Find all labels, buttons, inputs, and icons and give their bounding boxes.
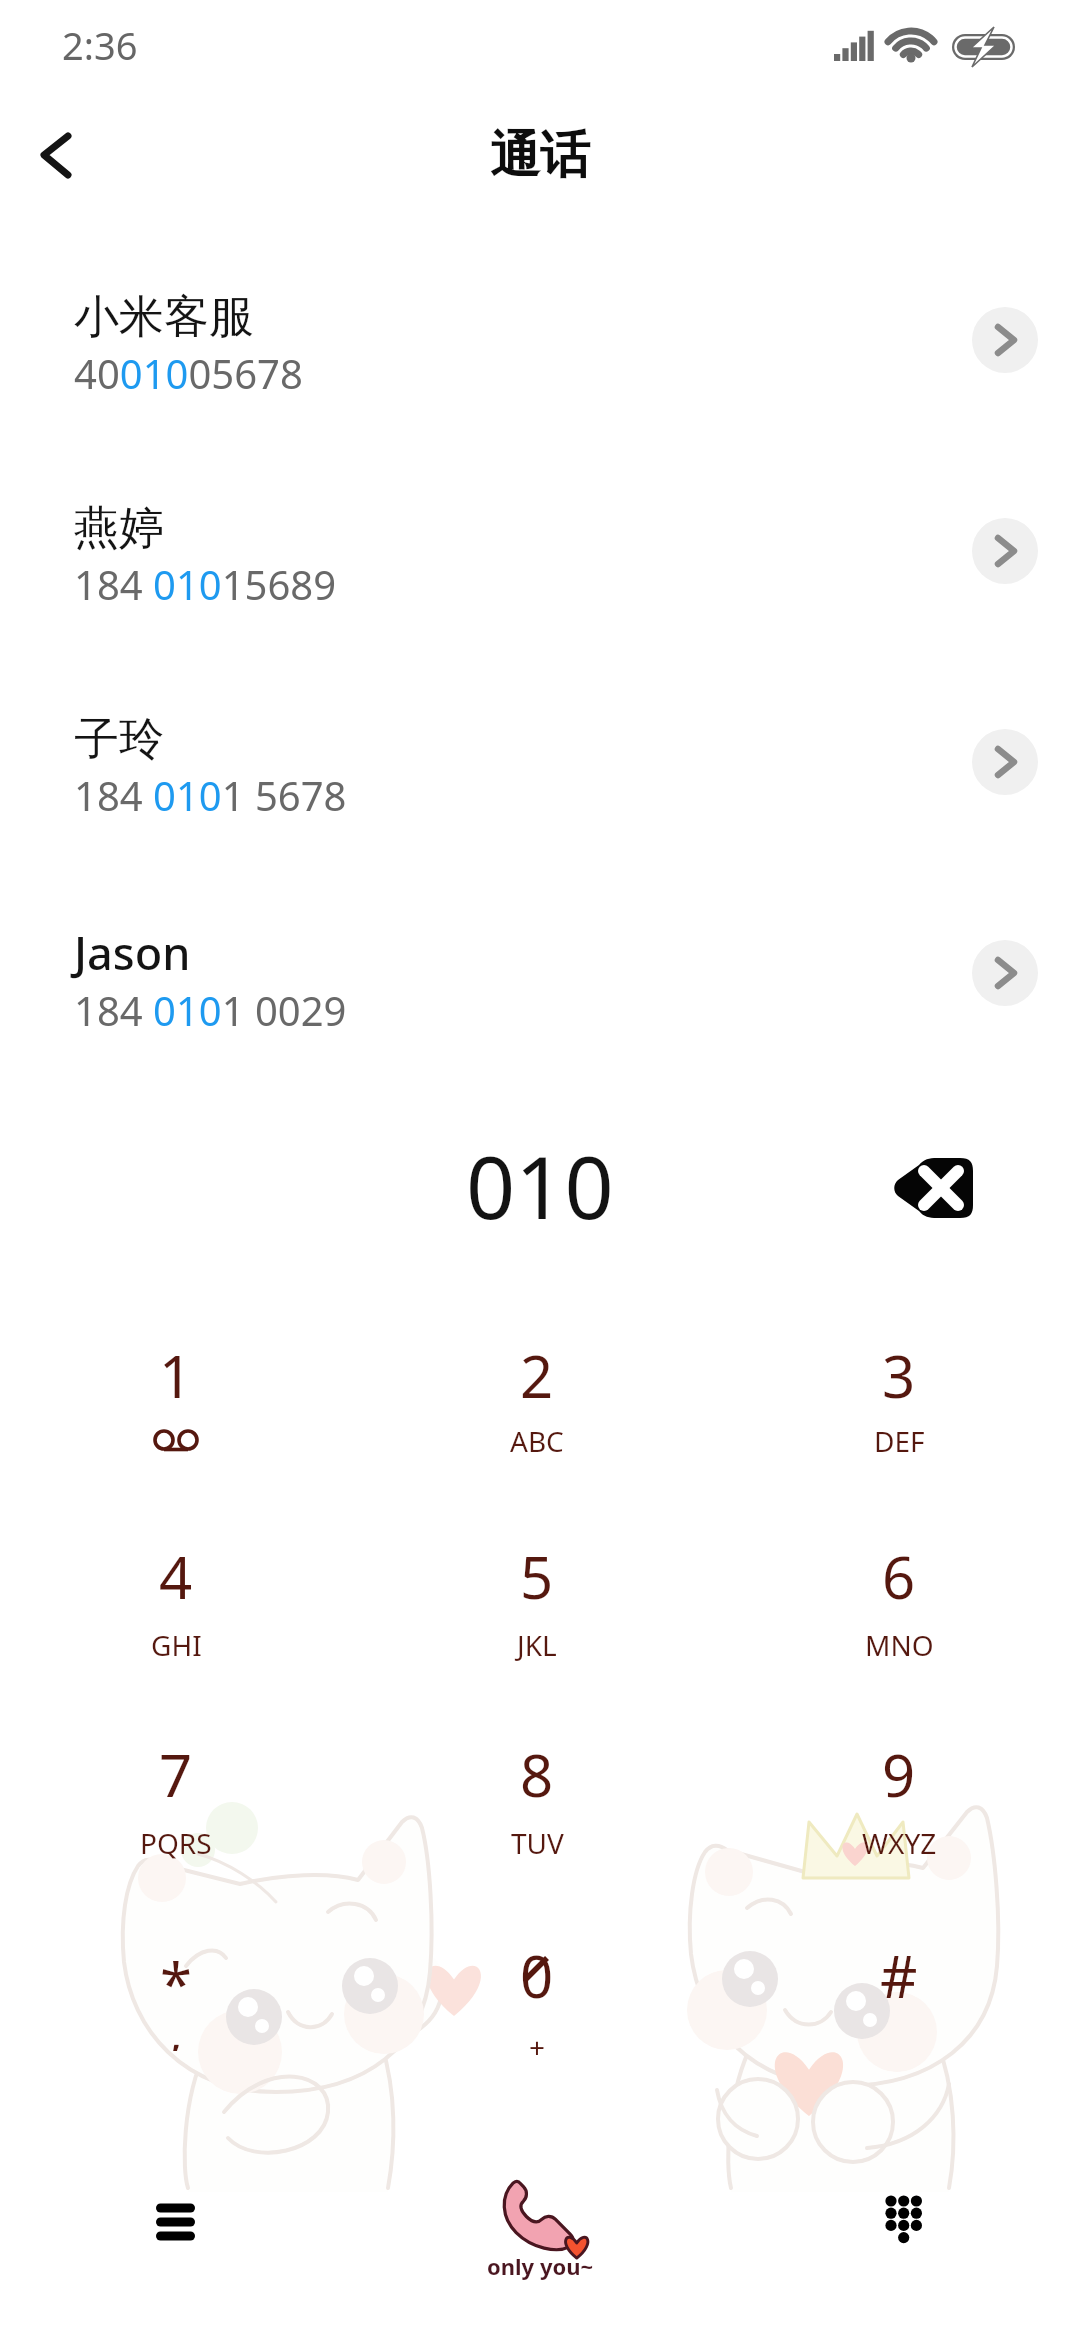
staticText: 子玲 <box>74 711 164 768</box>
staticText: TUV <box>511 1824 564 1862</box>
staticText: ABC <box>510 1422 564 1460</box>
staticText: GHI <box>151 1626 202 1664</box>
button[interactable]: Back <box>10 110 100 200</box>
staticText: 184 0101 0029 <box>74 983 347 1037</box>
button[interactable]: 5 <box>417 1507 657 1687</box>
button[interactable]: 0 <box>417 1906 657 2086</box>
staticText: WXYZ <box>862 1824 937 1862</box>
button[interactable]: 6 <box>779 1507 1019 1687</box>
staticText: 8 <box>520 1735 554 1807</box>
button[interactable]: 小米客服 <box>0 279 1080 490</box>
staticText: 9 <box>882 1735 916 1807</box>
staticText: , <box>170 2001 183 2051</box>
staticText: JKL <box>517 1626 557 1664</box>
button[interactable]: Menu <box>115 2175 235 2265</box>
staticText: 6 <box>882 1537 916 1609</box>
button[interactable]: Jason <box>0 912 1080 1123</box>
staticText: DEF <box>874 1422 925 1460</box>
staticText: 4001005678 <box>74 346 303 400</box>
button[interactable]: Details <box>972 729 1038 795</box>
staticText: 7 <box>159 1735 193 1807</box>
button[interactable]: 4 <box>56 1507 296 1687</box>
button[interactable]: 2 <box>417 1306 657 1486</box>
button[interactable]: Details <box>972 940 1038 1006</box>
button[interactable]: * <box>56 1906 296 2086</box>
staticText: 4 <box>159 1537 193 1609</box>
staticText: # <box>880 1936 918 2008</box>
staticText: * <box>160 1944 192 2016</box>
staticText: 燕婷 <box>74 500 164 557</box>
button[interactable]: # <box>779 1906 1019 2086</box>
button[interactable]: 子玲 <box>0 701 1080 912</box>
staticText: only you~ <box>487 2251 594 2281</box>
button[interactable]: 7 <box>56 1705 296 1885</box>
staticText: 184 0101 5678 <box>74 768 347 822</box>
staticText: 010 <box>466 1127 614 1244</box>
staticText: 5 <box>520 1537 554 1609</box>
button[interactable]: 燕婷 <box>0 490 1080 701</box>
staticText: 通话 <box>490 124 590 187</box>
button[interactable]: 9 <box>779 1705 1019 1885</box>
staticText: 3 <box>882 1336 916 1408</box>
button[interactable]: Backspace <box>893 1158 973 1218</box>
staticText: PQRS <box>140 1824 212 1862</box>
staticText: + <box>529 2028 546 2066</box>
button[interactable]: 1 <box>56 1306 296 1486</box>
button[interactable]: 3 <box>779 1306 1019 1486</box>
staticText: 1 <box>159 1336 193 1408</box>
staticText: MNO <box>865 1626 934 1664</box>
staticText: 2 <box>520 1336 554 1408</box>
staticText: 0 <box>520 1936 554 2008</box>
button[interactable]: Details <box>972 518 1038 584</box>
staticText: 小米客服 <box>74 289 254 346</box>
button[interactable]: 8 <box>417 1705 657 1885</box>
button[interactable]: Dialpad <box>844 2170 964 2270</box>
button[interactable]: Details <box>972 307 1038 373</box>
staticText: 2:36 <box>62 19 138 71</box>
staticText: Jason <box>74 922 191 983</box>
button[interactable]: Call <box>503 2180 595 2260</box>
staticText: 184 01015689 <box>74 557 337 611</box>
